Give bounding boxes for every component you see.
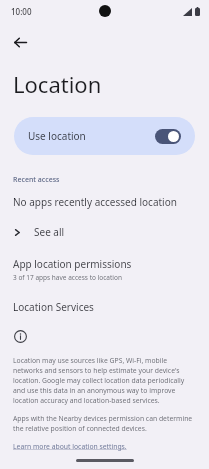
staticText: 3 of 17 apps have access to location [13,273,122,282]
staticText: Location [13,69,102,99]
staticText: App location permissions [13,257,132,271]
button[interactable]: Back [5,27,35,57]
other: Information [12,328,28,344]
staticText: 10:00 [11,6,32,17]
staticText: Location may use sources like GPS, Wi-Fi… [13,356,197,405]
staticText: Apps with the Nearby devices permission … [13,414,197,433]
staticText: Use location [28,129,86,143]
button[interactable]: See all [0,220,209,244]
button[interactable]: Use location [14,117,195,155]
staticText: Learn more about location settings. [13,442,127,451]
staticText: See all [34,225,65,239]
staticText: No apps recently accessed location [13,195,177,209]
staticText: Location Services [13,300,94,314]
staticText: Recent access [13,175,60,185]
button[interactable]: App location permissions [0,256,209,284]
button[interactable]: Learn more about location settings. [13,442,127,451]
